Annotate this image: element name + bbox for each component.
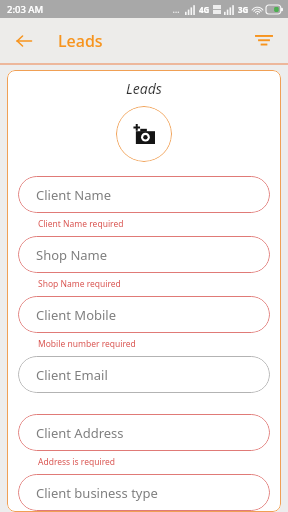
staticText: Mobile number required [38, 338, 136, 350]
staticText: Client Address [36, 424, 124, 442]
button[interactable]: Add photo [116, 106, 172, 162]
button[interactable]: Client Mobile [18, 296, 270, 333]
staticText: Shop Name [36, 246, 108, 264]
staticText: 3G [238, 4, 249, 15]
staticText: Client Mobile [36, 306, 117, 324]
staticText: Client business type [36, 484, 158, 502]
button[interactable]: Client Email [18, 356, 270, 393]
button[interactable]: Client Address [18, 414, 270, 451]
staticText: Client Email [36, 366, 108, 384]
staticText: Client Name required [38, 218, 124, 230]
staticText: Leads [58, 30, 103, 52]
staticText: 4G [199, 4, 210, 15]
staticText: Address is required [38, 456, 116, 468]
staticText: Leads [7, 79, 281, 98]
staticText: 2:03 AM [7, 3, 44, 16]
button[interactable]: Client business type [18, 474, 270, 511]
staticText: Client Name [36, 186, 112, 204]
button[interactable]: Client Name [18, 176, 270, 213]
staticText: Shop Name required [38, 278, 121, 290]
button[interactable]: Filter [248, 25, 280, 57]
button[interactable]: Back [8, 25, 40, 57]
button[interactable]: Shop Name [18, 236, 270, 273]
